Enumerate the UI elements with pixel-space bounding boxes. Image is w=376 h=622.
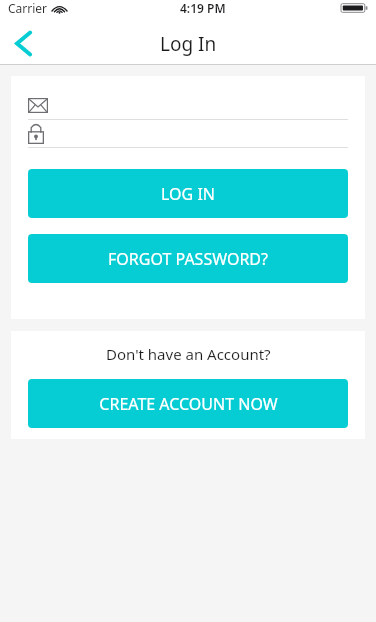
- staticText: LOG IN: [161, 183, 215, 205]
- staticText: FORGOT PASSWORD?: [108, 248, 268, 270]
- button[interactable]: CREATE ACCOUNT NOW: [28, 379, 348, 428]
- staticText: Carrier: [8, 0, 48, 16]
- staticText: Log In: [160, 31, 217, 57]
- staticText: 4:19 PM: [180, 0, 226, 16]
- button[interactable]: FORGOT PASSWORD?: [28, 234, 348, 283]
- staticText: Don't have an Account?: [106, 344, 271, 364]
- button[interactable]: LOG IN: [28, 169, 348, 218]
- button[interactable]: Back: [0, 22, 46, 65]
- staticText: CREATE ACCOUNT NOW: [99, 393, 278, 415]
